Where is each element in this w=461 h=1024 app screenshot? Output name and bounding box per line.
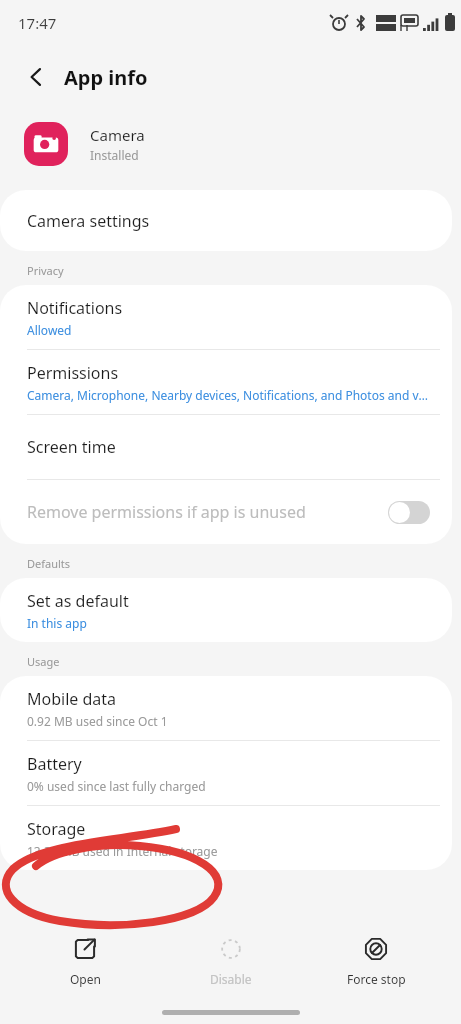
staticText: Mobile data (27, 688, 117, 710)
staticText: 13.31 MB used in Internal storage (27, 843, 218, 859)
staticText: Camera (90, 125, 145, 145)
button[interactable]: Permissions (0, 350, 452, 414)
staticText: 0% used since last fully charged (27, 778, 206, 794)
button[interactable]: Open (25, 930, 145, 993)
staticText: Allowed (27, 322, 72, 338)
staticText: Installed (90, 147, 139, 163)
button[interactable]: Back (12, 53, 60, 101)
button[interactable]: Screen time (0, 415, 452, 479)
staticText: 0.92 MB used since Oct 1 (27, 713, 168, 729)
staticText: In this app (27, 615, 87, 631)
staticText: Defaults (27, 556, 71, 571)
staticText: 17:47 (18, 13, 57, 33)
staticText: App info (64, 64, 148, 91)
button[interactable]: Force stop (316, 930, 436, 993)
staticText: Notifications (27, 297, 123, 319)
staticText: Remove permissions if app is unused (27, 501, 306, 523)
button[interactable]: Remove permissions if app is unused (0, 480, 452, 544)
staticText: Camera, Microphone, Nearby devices, Noti… (27, 387, 430, 403)
button[interactable]: Storage (0, 806, 452, 870)
staticText: Permissions (27, 362, 119, 384)
staticText: Usage (27, 654, 60, 669)
button[interactable]: Mobile data (0, 676, 452, 740)
staticText: Privacy (27, 263, 64, 278)
staticText: Open (70, 971, 101, 987)
staticText: Set as default (27, 590, 129, 612)
staticText: Screen time (27, 436, 116, 458)
button[interactable]: Disable (171, 930, 291, 993)
staticText: Battery (27, 753, 82, 775)
staticText: Force stop (347, 971, 406, 987)
button[interactable]: Notifications (0, 285, 452, 349)
button[interactable]: Battery (0, 741, 452, 805)
staticText: Storage (27, 818, 86, 840)
button[interactable]: Set as default (0, 578, 452, 642)
staticText: Disable (210, 971, 252, 987)
staticText: Camera settings (27, 210, 150, 232)
button[interactable]: Camera settings (0, 190, 452, 251)
